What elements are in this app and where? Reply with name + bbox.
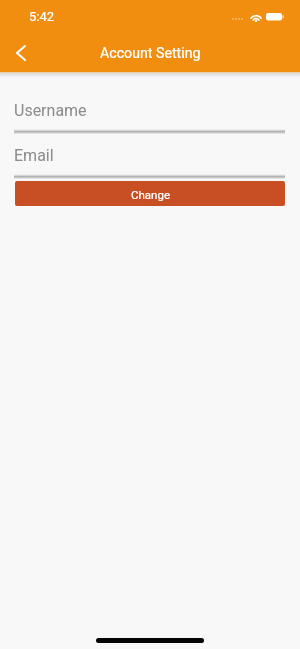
staticText: Email [14,146,54,165]
button[interactable]: Back [3,35,39,71]
staticText: 5:42 [29,9,55,24]
staticText: Change [131,188,170,201]
button[interactable]: Change [15,181,285,206]
staticText: Account Setting [100,45,201,62]
staticText: Username [14,101,87,120]
